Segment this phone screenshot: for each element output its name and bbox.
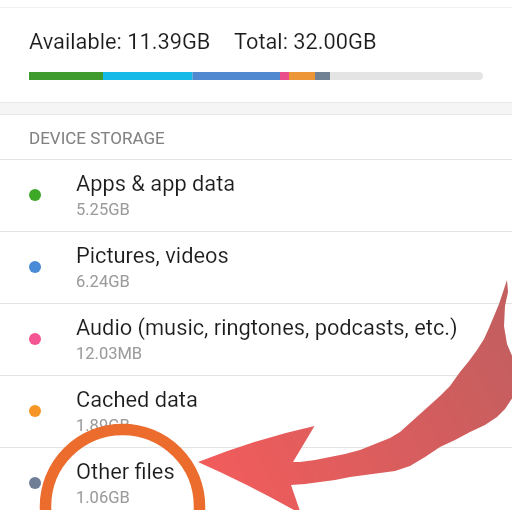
button[interactable]: Audio (music, ringtones, podcasts, etc.) <box>0 303 512 375</box>
button[interactable]: Other files <box>0 447 512 510</box>
other: Annotation highlight <box>0 0 512 510</box>
staticText: 1.06GB <box>76 488 130 507</box>
staticText: Apps & app data <box>76 171 236 197</box>
staticText: 5.25GB <box>76 200 130 219</box>
staticText: Other files <box>76 459 175 485</box>
staticText: Available: 11.39GB <box>29 29 211 55</box>
staticText: Cached data <box>76 387 198 413</box>
staticText: Total: 32.00GB <box>234 29 377 55</box>
staticText: Pictures, videos <box>76 243 229 269</box>
staticText: 6.24GB <box>76 272 130 291</box>
staticText: 12.03MB <box>76 344 143 363</box>
button[interactable]: Pictures, videos <box>0 231 512 303</box>
staticText: Audio (music, ringtones, podcasts, etc.) <box>76 315 458 341</box>
staticText: 1.89GB <box>76 416 130 435</box>
staticText: DEVICE STORAGE <box>29 128 165 148</box>
button[interactable]: Cached data <box>0 375 512 447</box>
button[interactable]: Apps & app data <box>0 159 512 231</box>
